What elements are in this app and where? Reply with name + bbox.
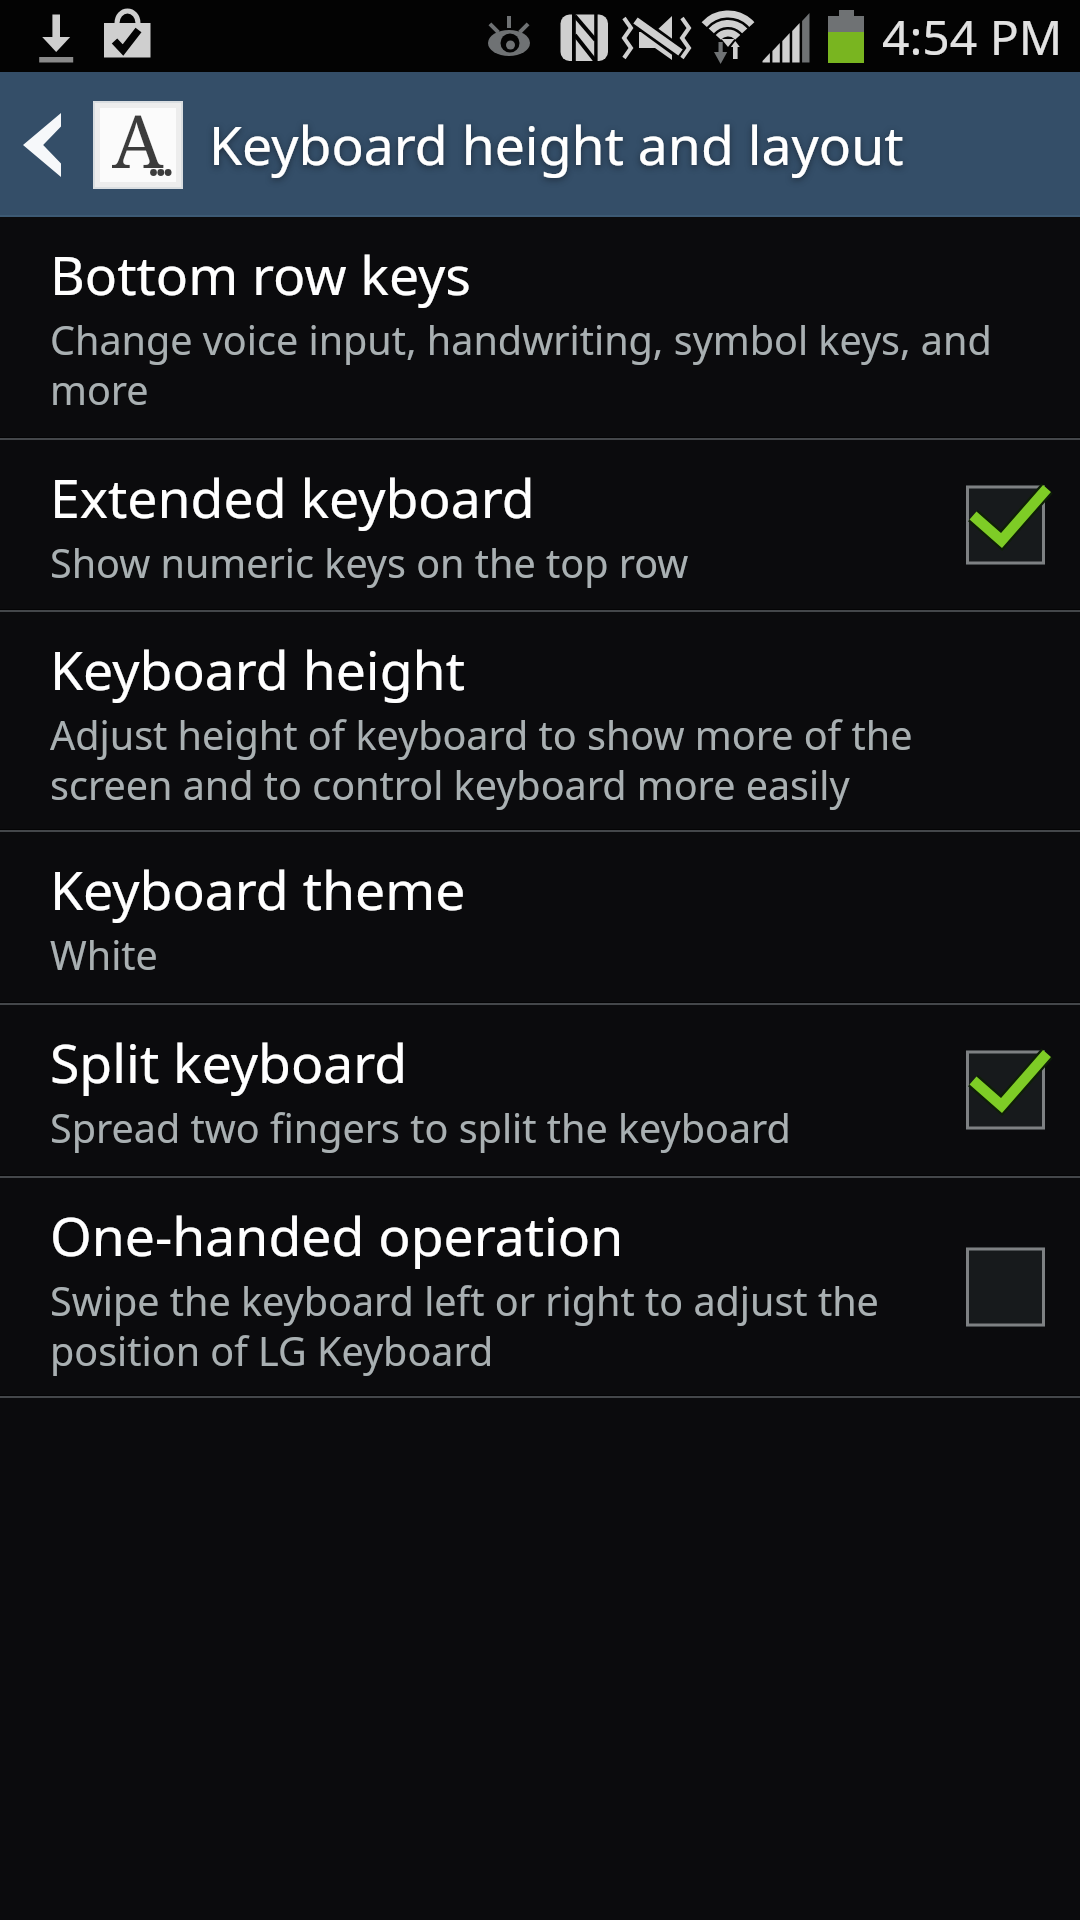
button[interactable]: Extended keyboard bbox=[0, 440, 1080, 609]
staticText: Change voice input, handwriting, symbol … bbox=[50, 313, 1010, 417]
staticText: Keyboard height bbox=[50, 633, 465, 706]
button[interactable]: Keyboard theme bbox=[0, 832, 1080, 1002]
staticText: A bbox=[112, 90, 164, 178]
button[interactable]: Extended keyboard, checked bbox=[966, 440, 1080, 609]
button[interactable]: Split keyboard bbox=[0, 1005, 1080, 1175]
staticText: Split keyboard bbox=[50, 1026, 408, 1099]
staticText: Spread two fingers to split the keyboard bbox=[50, 1101, 791, 1155]
staticText: Keyboard theme bbox=[50, 853, 466, 926]
staticText: One-handed operation bbox=[50, 1199, 624, 1272]
button[interactable]: Split keyboard, checked bbox=[966, 1005, 1080, 1175]
button[interactable]: Back bbox=[0, 72, 93, 217]
staticText: Bottom row keys bbox=[50, 238, 471, 311]
staticText: Show numeric keys on the top row bbox=[50, 536, 689, 590]
button[interactable]: Bottom row keys bbox=[0, 217, 1080, 437]
button[interactable]: One-handed operation bbox=[0, 1178, 1080, 1395]
staticText: Keyboard height and layout bbox=[209, 108, 904, 181]
staticText: Adjust height of keyboard to show more o… bbox=[50, 708, 1010, 812]
staticText: Extended keyboard bbox=[50, 461, 535, 534]
staticText: 4:54 PM bbox=[882, 4, 1063, 69]
button[interactable]: One-handed operation, not checked bbox=[966, 1178, 1080, 1395]
button[interactable]: Keyboard height bbox=[0, 612, 1080, 829]
staticText: Swipe the keyboard left or right to adju… bbox=[50, 1274, 1010, 1378]
staticText: White bbox=[50, 928, 158, 982]
